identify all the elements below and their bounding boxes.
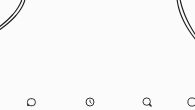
button[interactable]: Account	[181, 91, 195, 110]
button[interactable]: Chats	[20, 91, 42, 110]
button[interactable]: Search	[136, 91, 158, 110]
button[interactable]: Recent	[79, 91, 101, 110]
